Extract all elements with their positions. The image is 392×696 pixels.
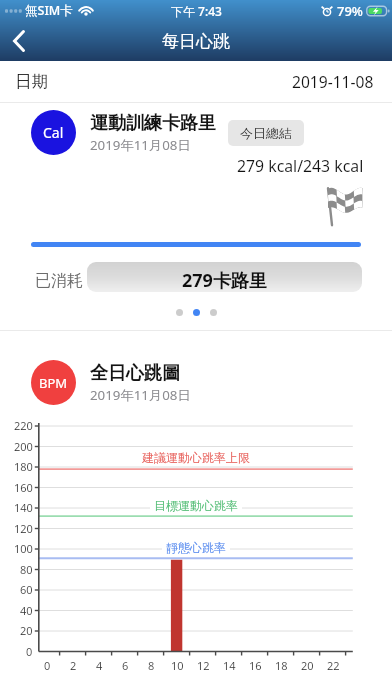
staticText: 18: [275, 658, 288, 673]
staticText: 100: [14, 541, 33, 556]
staticText: 79%: [337, 2, 363, 20]
staticText: 日期: [15, 71, 48, 92]
staticText: 16: [249, 658, 262, 673]
button[interactable]: Back: [0, 22, 38, 60]
staticText: 20: [301, 658, 314, 673]
staticText: 279卡路里: [182, 268, 267, 292]
staticText: 今日總結: [240, 125, 292, 141]
staticText: 全日心跳圖: [90, 362, 180, 385]
staticText: 40: [20, 603, 33, 618]
staticText: 運動訓練卡路里: [90, 112, 216, 135]
staticText: 2019年11月08日: [90, 136, 191, 154]
staticText: 200: [14, 439, 33, 454]
staticText: 140: [14, 500, 33, 515]
staticText: 下午 7:43: [171, 3, 222, 19]
staticText: 無SIM卡: [25, 2, 73, 19]
staticText: 已消耗: [35, 271, 83, 291]
staticText: 每日心跳: [162, 31, 230, 52]
staticText: 80: [20, 562, 33, 577]
staticText: 4: [96, 658, 103, 673]
staticText: 14: [223, 658, 236, 673]
staticText: 120: [14, 521, 33, 536]
button[interactable]: 279卡路里: [87, 262, 362, 292]
staticText: 8: [148, 658, 155, 673]
staticText: 0: [44, 658, 51, 673]
staticText: 20: [20, 623, 33, 638]
staticText: 6: [122, 658, 129, 673]
staticText: 22: [327, 658, 340, 673]
staticText: 2019年11月08日: [90, 386, 191, 404]
staticText: 靜態心跳率: [166, 540, 226, 555]
staticText: 建議運動心跳率上限: [142, 450, 250, 465]
staticText: 279 kcal/243 kcal: [237, 155, 364, 177]
staticText: 2019-11-08: [292, 71, 374, 92]
staticText: 220: [14, 418, 33, 433]
staticText: 2: [70, 658, 77, 673]
staticText: Cal: [43, 123, 64, 142]
staticText: 60: [20, 582, 33, 597]
staticText: 160: [14, 480, 33, 495]
staticText: 目標運動心跳率: [154, 498, 238, 513]
staticText: 180: [14, 459, 33, 474]
staticText: 10: [171, 658, 184, 673]
staticText: BPM: [39, 374, 68, 392]
button[interactable]: 今日總結: [228, 120, 304, 146]
staticText: 12: [197, 658, 210, 673]
staticText: 0: [26, 644, 33, 659]
